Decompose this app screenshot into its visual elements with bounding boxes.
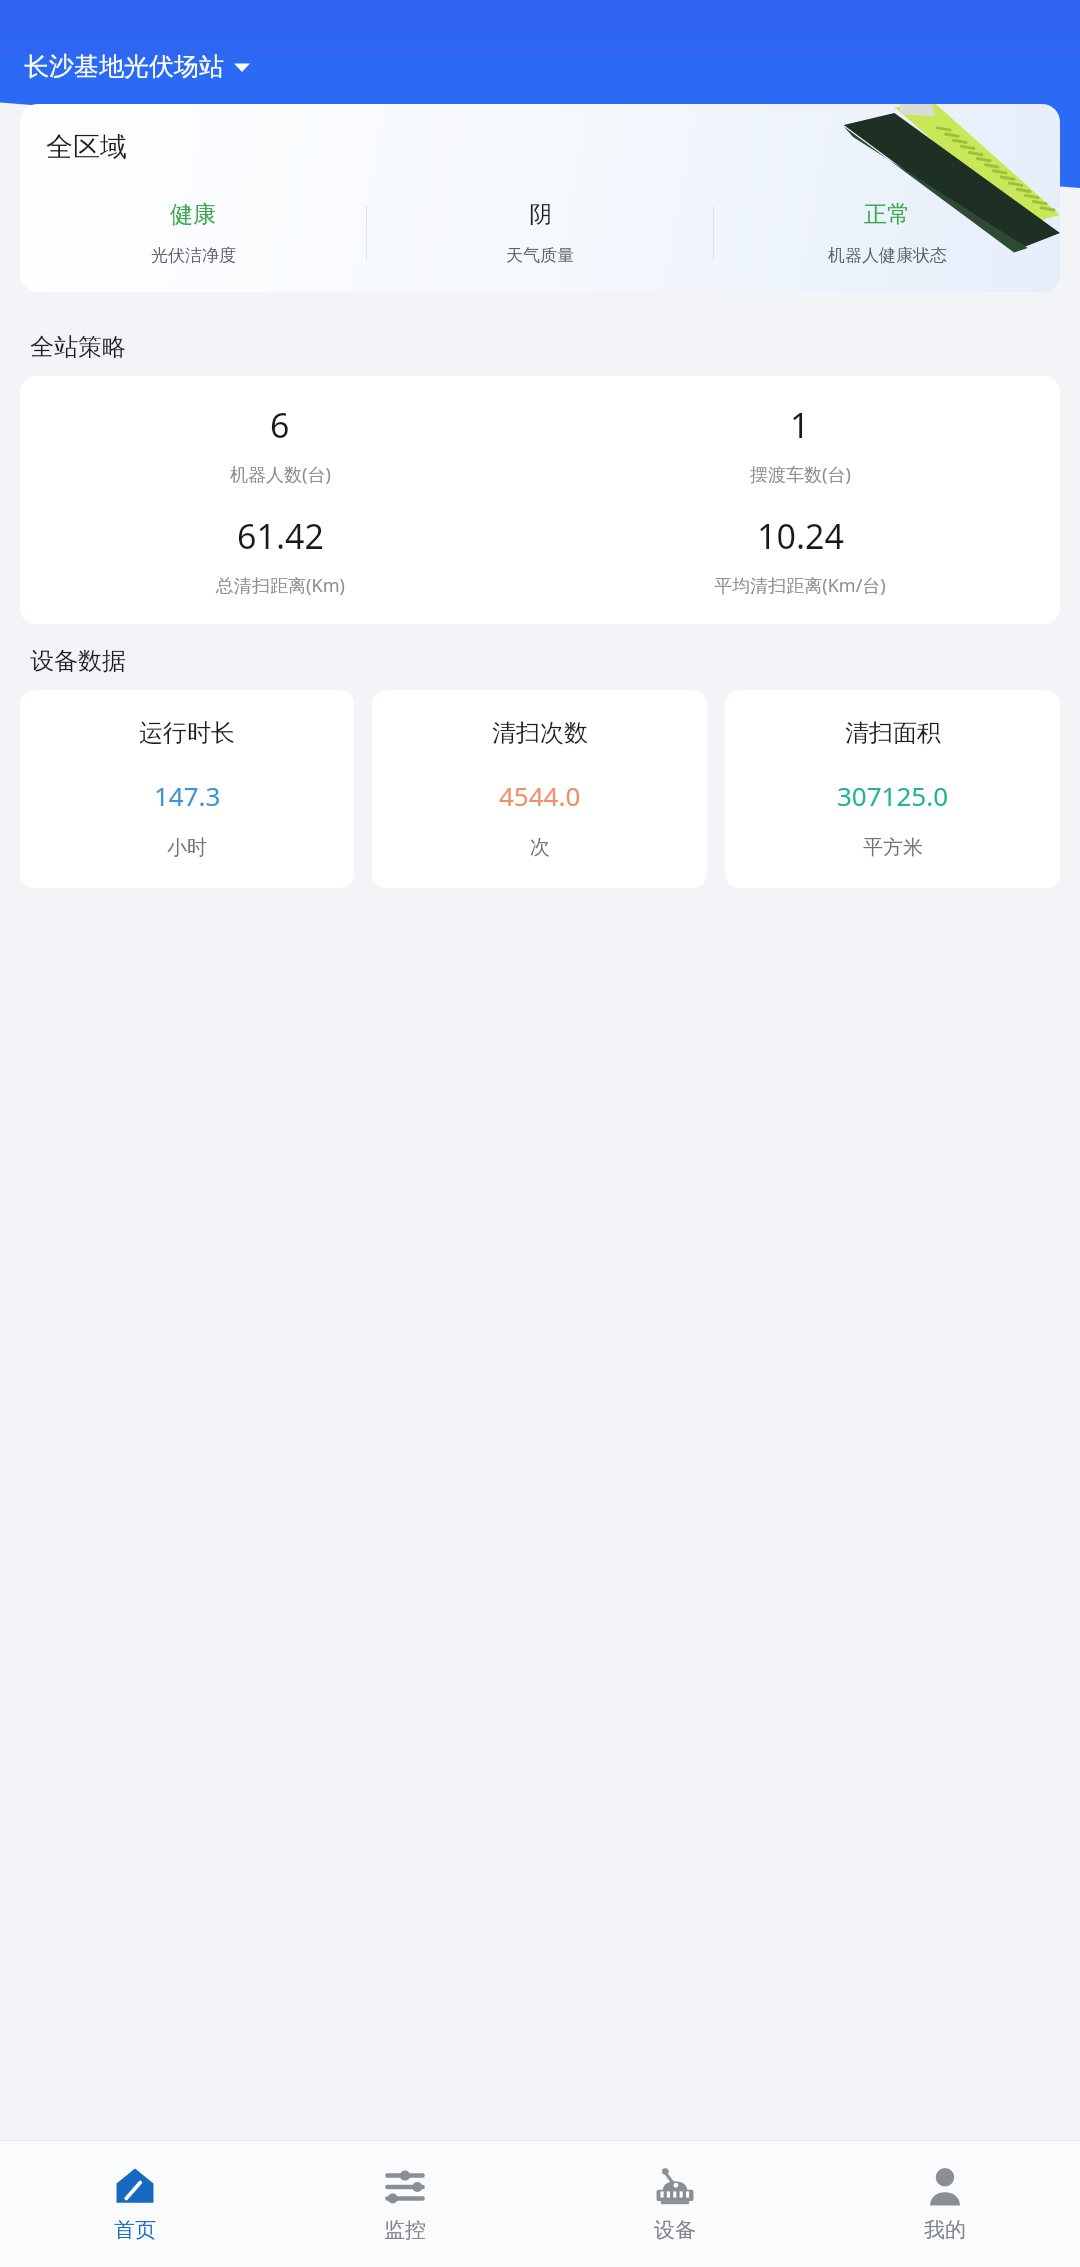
staticText: 平方米 xyxy=(863,835,923,860)
staticText: 307125.0 xyxy=(837,778,949,813)
staticText: 1 xyxy=(790,402,810,448)
staticText: 设备 xyxy=(654,2217,696,2243)
button[interactable]: 运行时长 xyxy=(20,690,354,888)
staticText: 光伏洁净度 xyxy=(151,245,236,266)
staticText: 147.3 xyxy=(154,778,221,813)
staticText: 6 xyxy=(270,402,290,448)
staticText: 清扫次数 xyxy=(492,718,588,748)
staticText: 4544.0 xyxy=(499,778,581,813)
button[interactable]: 首页 xyxy=(0,2141,270,2267)
staticText: 我的 xyxy=(924,2217,966,2243)
staticText: 健康 xyxy=(170,200,216,229)
staticText: 摆渡车数(台) xyxy=(750,462,851,487)
staticText: 61.42 xyxy=(237,513,324,559)
button[interactable]: 6 xyxy=(20,376,1060,624)
staticText: 机器人健康状态 xyxy=(828,245,947,266)
staticText: 次 xyxy=(530,835,550,860)
staticText: 首页 xyxy=(114,2217,156,2243)
staticText: 总清扫距离(Km) xyxy=(216,573,345,598)
staticText: 清扫面积 xyxy=(845,718,941,748)
button[interactable]: 清扫面积 xyxy=(725,690,1060,888)
button[interactable]: 设备 xyxy=(540,2141,810,2267)
button[interactable]: 我的 xyxy=(810,2141,1080,2267)
staticText: 全站策略 xyxy=(30,332,126,362)
staticText: 监控 xyxy=(384,2217,426,2243)
staticText: 阴 xyxy=(529,200,552,229)
button[interactable]: 全区域 xyxy=(20,104,1060,292)
staticText: 运行时长 xyxy=(139,718,235,748)
staticText: 设备数据 xyxy=(30,646,126,676)
button[interactable]: 清扫次数 xyxy=(372,690,707,888)
staticText: 长沙基地光伏场站 xyxy=(24,51,224,82)
staticText: 机器人数(台) xyxy=(230,462,331,487)
staticText: 天气质量 xyxy=(506,245,574,266)
staticText: 10.24 xyxy=(757,513,844,559)
button[interactable]: 监控 xyxy=(270,2141,540,2267)
staticText: 全区域 xyxy=(46,130,127,164)
staticText: 平均清扫距离(Km/台) xyxy=(714,573,886,598)
button[interactable]: 长沙基地光伏场站 xyxy=(24,51,250,82)
staticText: 小时 xyxy=(167,835,207,860)
staticText: 正常 xyxy=(864,200,910,229)
